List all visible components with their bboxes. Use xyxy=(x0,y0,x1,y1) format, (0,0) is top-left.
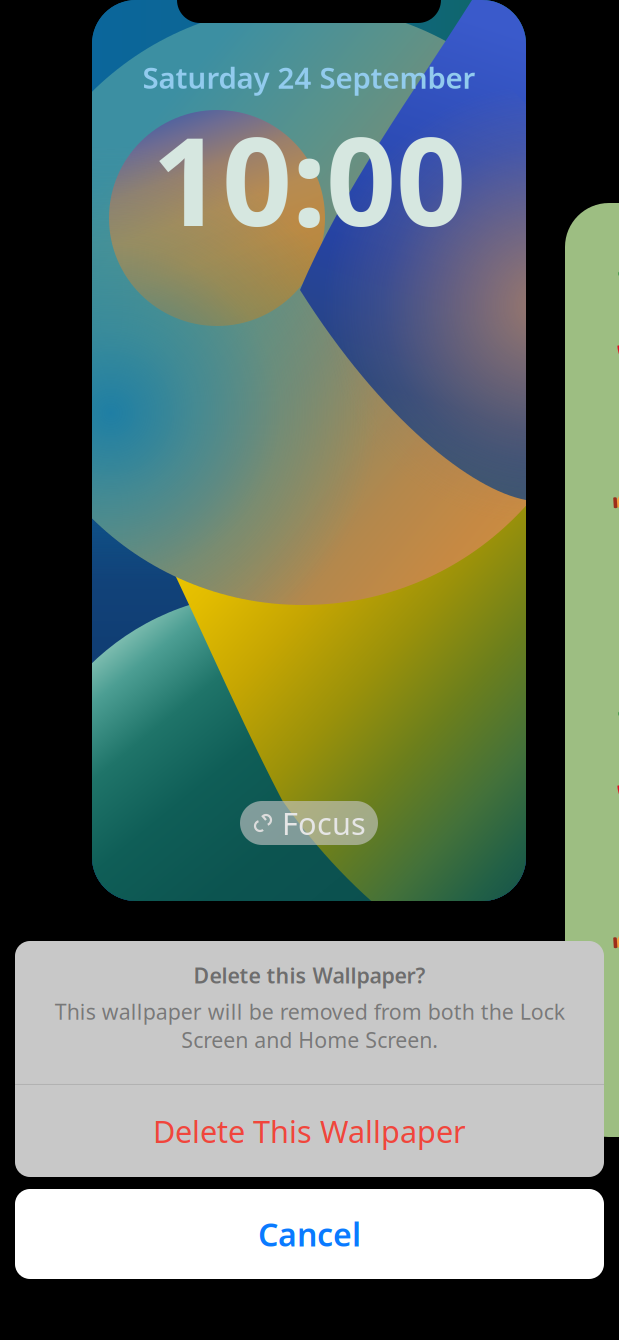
staticText: 🍁 xyxy=(607,315,619,409)
staticText: Delete This Wallpaper xyxy=(153,1111,466,1151)
staticText: This wallpaper will be removed from both… xyxy=(54,997,564,1054)
staticText: 🌲 xyxy=(607,645,619,739)
button[interactable]: Focus xyxy=(240,801,378,845)
staticText: 🍁 xyxy=(607,755,619,849)
staticText: Focus xyxy=(282,803,366,843)
button[interactable]: Delete This Wallpaper xyxy=(15,1085,604,1177)
staticText: ⛺️ xyxy=(607,425,619,519)
staticText: Saturday 24 September xyxy=(142,58,475,97)
button[interactable]: Cancel xyxy=(15,1189,604,1279)
staticText: Cancel xyxy=(258,1213,361,1255)
staticText: 🌲 xyxy=(607,1085,619,1179)
staticText: 🌲 xyxy=(607,205,619,299)
staticText: ⛺️ xyxy=(607,865,619,959)
staticText: 10:00 xyxy=(152,97,466,260)
staticText: Delete this Wallpaper? xyxy=(193,961,425,989)
